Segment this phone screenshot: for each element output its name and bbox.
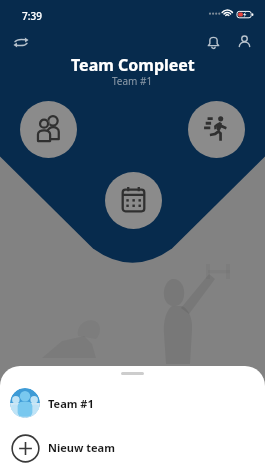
button[interactable]: Nieuw team (0, 425, 265, 470)
button[interactable]: Members (20, 101, 77, 158)
button[interactable]: Team #1 (0, 381, 265, 425)
button[interactable]: Activity (188, 101, 245, 158)
button[interactable]: Notifications (199, 28, 227, 56)
button[interactable]: Calendar (105, 172, 162, 229)
staticText: 7:39 (22, 9, 42, 23)
button[interactable]: Switch team (7, 28, 35, 56)
button[interactable]: Account (230, 28, 258, 56)
staticText: Team #1 (48, 396, 94, 411)
staticText: Nieuw team (48, 440, 115, 455)
staticText: Team Compleet (71, 54, 195, 76)
staticText: Team #1 (112, 74, 153, 88)
